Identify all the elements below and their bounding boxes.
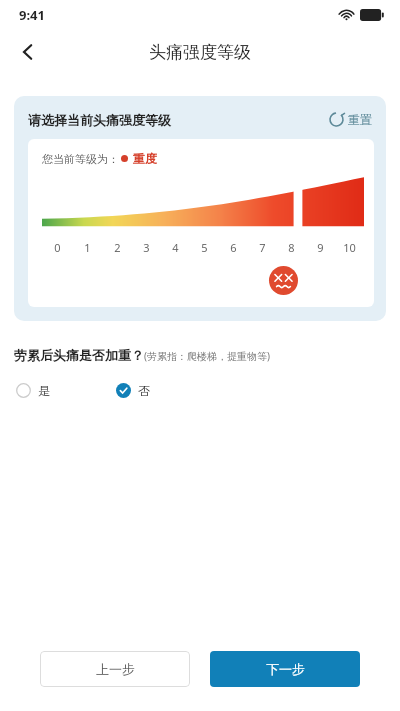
- button[interactable]: 是: [14, 379, 52, 402]
- staticText: 2: [114, 240, 121, 255]
- other: 重度表情: [269, 266, 298, 295]
- staticText: 请选择当前头痛强度等级: [28, 112, 171, 128]
- staticText: 5: [201, 240, 208, 255]
- button[interactable]: 上一步: [40, 651, 190, 687]
- staticText: 4: [172, 240, 179, 255]
- staticText: 重度: [133, 151, 157, 166]
- button[interactable]: 返回: [6, 30, 50, 74]
- staticText: (劳累指：爬楼梯，提重物等): [144, 349, 270, 363]
- staticText: 9: [317, 240, 324, 255]
- staticText: 劳累后头痛是否加重？: [14, 347, 144, 363]
- staticText: 是: [38, 383, 50, 398]
- staticText: 重置: [348, 112, 372, 127]
- staticText: 您当前等级为：: [42, 152, 119, 166]
- staticText: 下一步: [266, 661, 305, 677]
- button[interactable]: 重置: [328, 110, 374, 129]
- staticText: 1: [84, 240, 91, 255]
- staticText: 7: [259, 240, 266, 255]
- staticText: 否: [138, 383, 150, 398]
- staticText: 6: [230, 240, 237, 255]
- staticText: 10: [343, 240, 356, 255]
- staticText: 头痛强度等级: [149, 42, 251, 63]
- button[interactable]: 否: [114, 379, 152, 402]
- button[interactable]: 下一步: [210, 651, 360, 687]
- staticText: 3: [143, 240, 150, 255]
- staticText: 上一步: [96, 661, 135, 677]
- staticText: 9:41: [19, 6, 45, 24]
- staticText: 8: [288, 240, 295, 255]
- staticText: 0: [54, 240, 61, 255]
